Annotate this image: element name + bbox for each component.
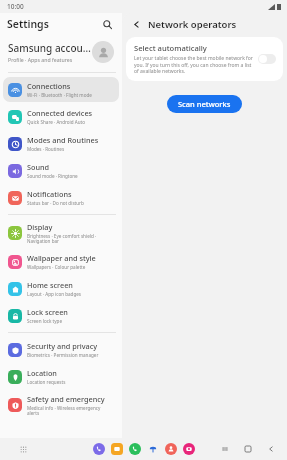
staticText: Network operators	[148, 18, 237, 31]
button[interactable]: Home screen	[3, 276, 119, 301]
staticText: Lock screen	[27, 307, 68, 317]
button[interactable]: Back	[128, 16, 144, 32]
staticText: Let your tablet choose the best mobile n…	[134, 55, 253, 74]
button[interactable]: camera	[183, 443, 195, 455]
button[interactable]: All apps	[16, 442, 30, 456]
staticText: Biometrics · Permission manager	[27, 352, 99, 358]
button[interactable]: umbrella	[147, 443, 159, 455]
staticText: Profile · Apps and features	[8, 56, 73, 63]
button[interactable]: Lock screen	[3, 303, 119, 328]
button[interactable]: Back	[265, 443, 277, 455]
staticText: Connections	[27, 81, 71, 91]
button[interactable]: Modes and Routines	[3, 131, 119, 156]
staticText: Connected devices	[27, 108, 93, 118]
button[interactable]: Samsung account	[0, 35, 122, 69]
staticText: Location requests	[27, 379, 66, 385]
staticText: Layout · App icon badges	[27, 291, 82, 297]
button[interactable]: phone2	[93, 443, 105, 455]
button[interactable]: Connected devices	[3, 104, 119, 129]
staticText: Select automatically	[134, 43, 207, 53]
staticText: Wi-Fi · Bluetooth · Flight mode	[27, 92, 92, 98]
staticText: Location	[27, 368, 57, 378]
staticText: Safety and emergency	[27, 394, 105, 404]
staticText: 10:00	[7, 2, 24, 11]
staticText: Modes · Routines	[27, 146, 65, 152]
button[interactable]: Notifications	[3, 185, 119, 210]
button[interactable]: phone	[129, 443, 141, 455]
button[interactable]: Security and privacy	[3, 337, 119, 362]
button[interactable]: Recents	[219, 443, 231, 455]
button[interactable]: Location	[3, 364, 119, 389]
button[interactable]: Wallpaper and style	[3, 249, 119, 274]
button[interactable]: Sound	[3, 158, 119, 183]
button[interactable]: Scan networks	[167, 95, 242, 113]
staticText: Wallpaper and style	[27, 253, 96, 263]
button[interactable]: Display	[3, 219, 119, 247]
staticText: Home screen	[27, 280, 73, 290]
staticText: Security and privacy	[27, 341, 98, 351]
staticText: Quick Share · Android Auto	[27, 119, 86, 125]
staticText: Sound	[27, 162, 50, 172]
button[interactable]: Connections	[3, 77, 119, 102]
button[interactable]: Select automatically	[126, 37, 283, 81]
staticText: Status bar · Do not disturb	[27, 200, 84, 206]
staticText: Sound mode · Ringtone	[27, 173, 78, 179]
staticText: Scan networks	[178, 99, 231, 109]
staticText: Brightness · Eye comfort shield · Naviga…	[27, 233, 97, 245]
staticText: Screen lock type	[27, 318, 62, 324]
staticText: Display	[27, 222, 53, 232]
button[interactable]: folder	[111, 443, 123, 455]
staticText: Samsung account	[8, 41, 92, 55]
button[interactable]: Home	[242, 443, 254, 455]
button[interactable]: Search	[98, 15, 116, 33]
staticText: Wallpapers · Colour palette	[27, 264, 86, 270]
button[interactable]: Safety and emergency	[3, 391, 119, 419]
staticText: Modes and Routines	[27, 135, 99, 145]
staticText: Notifications	[27, 189, 72, 199]
staticText: Settings	[7, 17, 98, 31]
button[interactable]: contact	[165, 443, 177, 455]
staticText: Medical info · Wireless emergency alerts	[27, 405, 101, 417]
